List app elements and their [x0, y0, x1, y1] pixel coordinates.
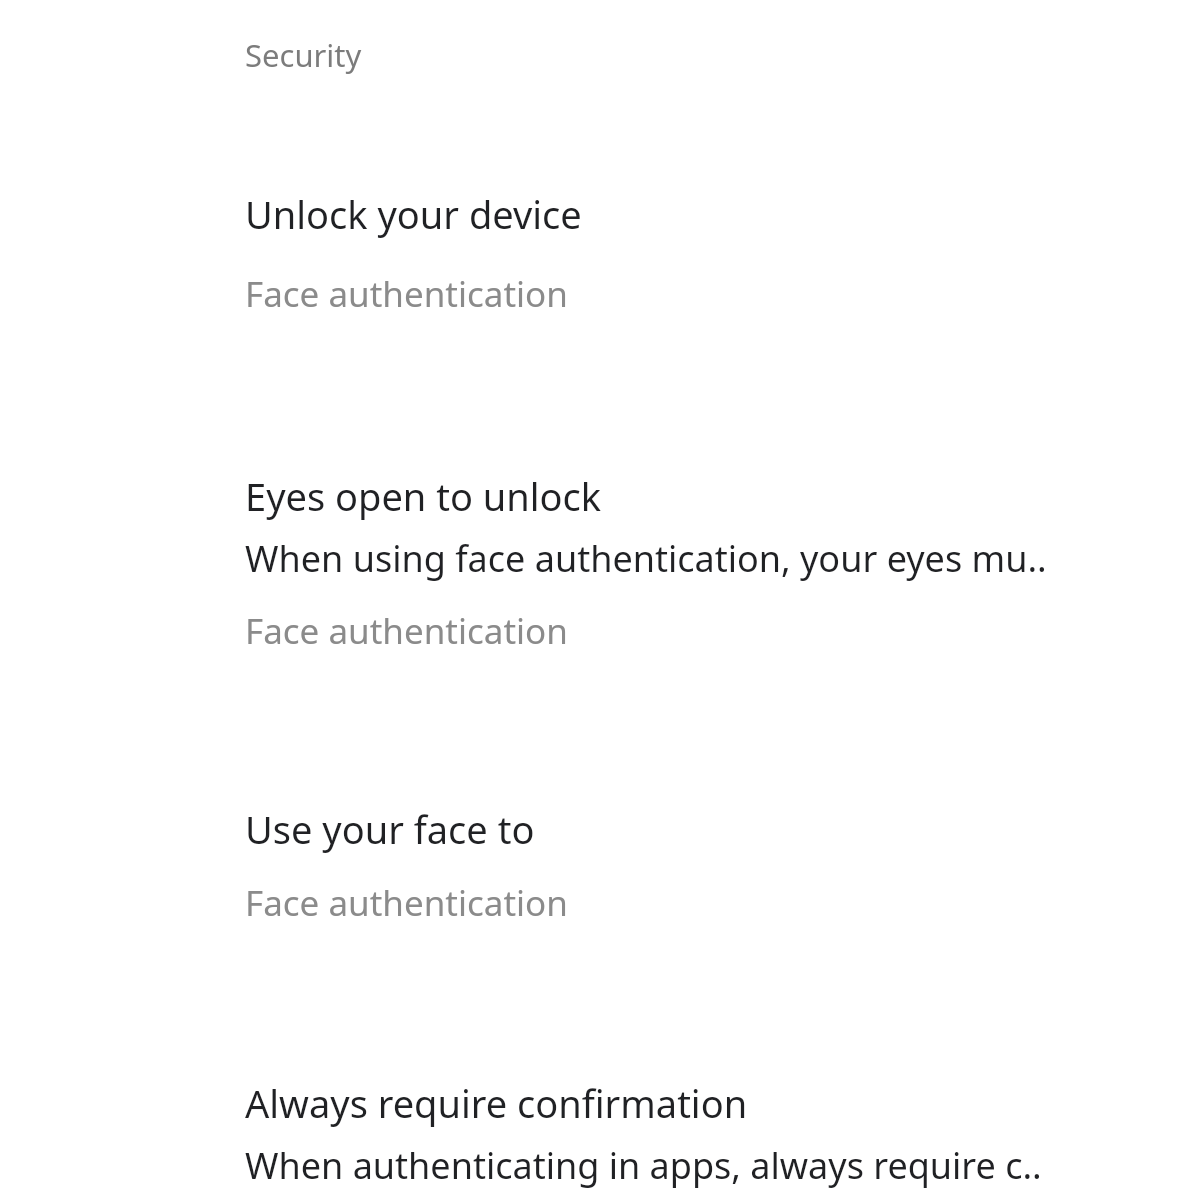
button[interactable]: Use your face to: [0, 655, 1200, 927]
staticText: Face authentication: [245, 607, 568, 655]
staticText: Use your face to: [245, 803, 535, 855]
staticText: When using face authentication, your eye…: [245, 534, 1047, 583]
button[interactable]: Unlock your device: [0, 76, 1200, 318]
button[interactable]: Always require confirmation: [0, 927, 1200, 1200]
staticText: Always require confirmation: [245, 1077, 748, 1129]
staticText: When authenticating in apps, always requ…: [245, 1141, 1042, 1190]
staticText: Eyes open to unlock: [245, 470, 602, 522]
staticText: Unlock your device: [245, 188, 582, 240]
staticText: Security: [245, 34, 362, 76]
staticText: Face authentication: [245, 879, 568, 927]
button[interactable]: Eyes open to unlock: [0, 318, 1200, 655]
staticText: Face authentication: [245, 270, 568, 318]
